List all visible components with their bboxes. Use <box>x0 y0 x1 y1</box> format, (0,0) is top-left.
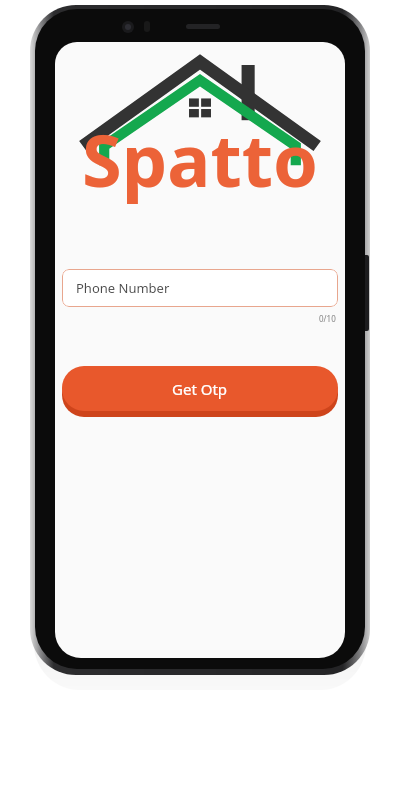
staticText: Spatto <box>82 110 318 208</box>
staticText: 0/10 <box>319 313 336 324</box>
button[interactable]: Phone Number <box>62 269 338 307</box>
staticText: Phone Number <box>76 279 170 297</box>
other: Power button <box>362 255 369 331</box>
button[interactable]: Get Otp <box>62 366 338 419</box>
staticText: Get Otp <box>172 379 228 399</box>
